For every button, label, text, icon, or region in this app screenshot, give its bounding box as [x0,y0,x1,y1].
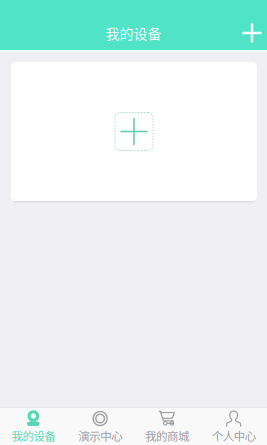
button[interactable]: 我的设备 [0,408,67,445]
button[interactable]: 个人中心 [200,408,267,445]
button[interactable]: Add device [237,19,267,47]
button[interactable]: Add a new device [114,112,153,151]
button[interactable]: 演示中心 [67,408,134,445]
button[interactable]: 我的商城 [133,408,200,445]
staticText: 演示中心 [78,427,122,444]
staticText: 个人中心 [212,427,256,444]
staticText: 我的设备 [11,427,55,444]
staticText: 我的设备 [105,23,161,43]
staticText: 我的商城 [145,427,189,444]
